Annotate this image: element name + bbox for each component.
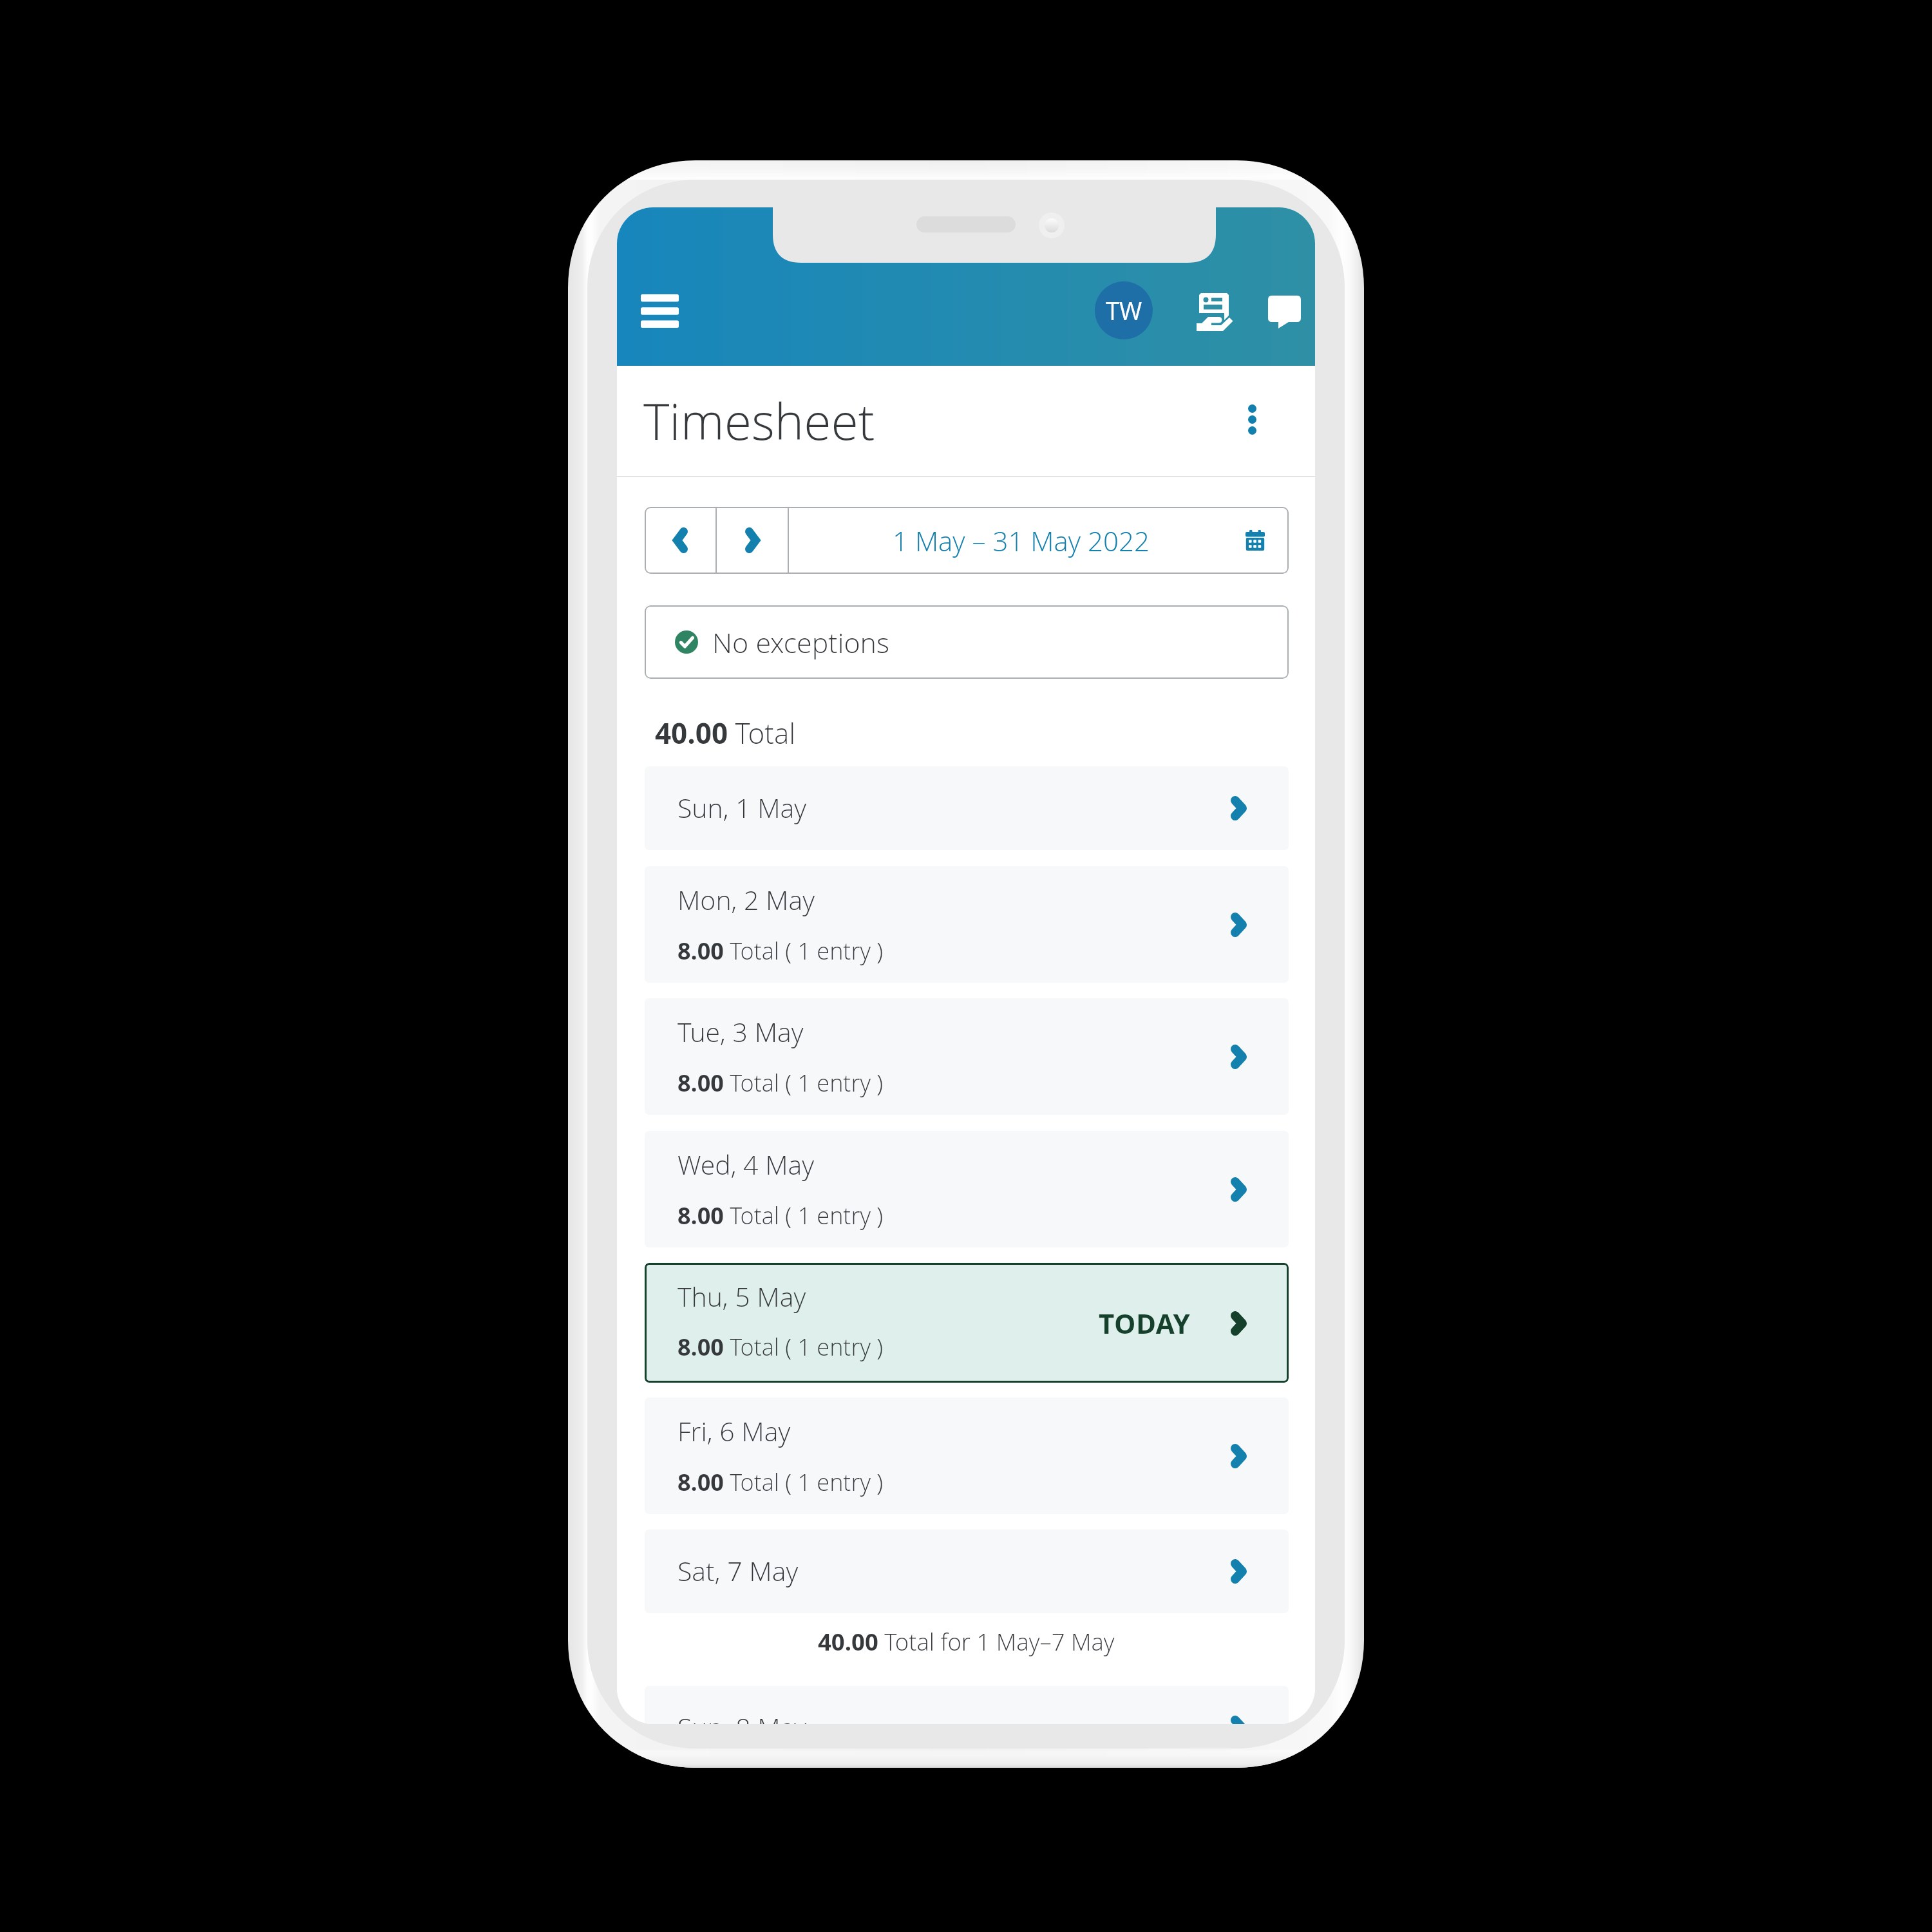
button[interactable]: No exceptions — [645, 605, 1289, 679]
button[interactable]: More options — [1222, 390, 1282, 449]
staticText: 1 May – 31 May 2022 — [893, 522, 1150, 559]
button[interactable]: Wed, 4 May — [645, 1131, 1289, 1247]
button[interactable]: Sun, 1 May — [645, 766, 1289, 850]
staticText: Tue, 3 May — [677, 1014, 804, 1050]
staticText: 8.00 Total ( 1 entry ) — [677, 1067, 884, 1099]
button[interactable]: Tue, 3 May — [645, 998, 1289, 1115]
button[interactable]: Sun, 8 May — [645, 1686, 1289, 1724]
staticText: 8.00 Total ( 1 entry ) — [677, 1200, 884, 1231]
button[interactable]: Thu, 5 May — [645, 1263, 1289, 1383]
staticText: Mon, 2 May — [677, 882, 815, 918]
staticText: No exceptions — [712, 623, 890, 661]
staticText: Sat, 7 May — [677, 1553, 799, 1589]
button[interactable]: Messages — [1250, 278, 1315, 346]
button[interactable]: TW — [1095, 281, 1153, 339]
staticText: 8.00 Total ( 1 entry ) — [677, 1331, 884, 1363]
button[interactable]: Mon, 2 May — [645, 866, 1289, 983]
staticText: Thu, 5 May — [677, 1278, 806, 1314]
staticText: TODAY — [1099, 1305, 1191, 1341]
button[interactable]: Sat, 7 May — [645, 1529, 1289, 1613]
button[interactable]: Open navigation menu — [617, 266, 708, 356]
staticText: 8.00 Total ( 1 entry ) — [677, 1466, 884, 1498]
staticText: TW — [1106, 294, 1142, 327]
staticText: Wed, 4 May — [677, 1146, 815, 1182]
button[interactable]: 1 May – 31 May 2022 — [789, 507, 1289, 574]
button[interactable]: Next period — [717, 507, 788, 574]
staticText: 40.00 Total for 1 May–7 May — [818, 1625, 1115, 1658]
staticText: Sun, 8 May — [677, 1709, 807, 1724]
button[interactable]: Previous period — [645, 507, 715, 574]
staticText: 8.00 Total ( 1 entry ) — [677, 935, 884, 967]
staticText: 40.00 Total — [655, 714, 796, 752]
staticText: Sun, 1 May — [677, 790, 807, 826]
staticText: Timesheet — [643, 387, 875, 455]
staticText: Fri, 6 May — [677, 1413, 791, 1449]
button[interactable]: Pay statements — [1180, 278, 1249, 346]
button[interactable]: Fri, 6 May — [645, 1397, 1289, 1514]
